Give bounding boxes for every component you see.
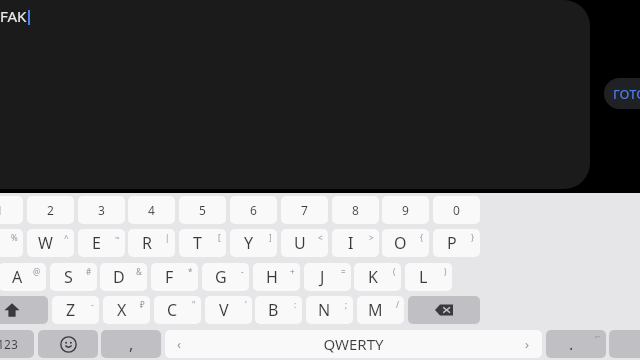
- button[interactable]: .: [546, 330, 606, 358]
- staticText: B: [268, 299, 279, 321]
- staticText: I: [348, 232, 354, 254]
- button[interactable]: L: [405, 263, 452, 291]
- button[interactable]: 9: [382, 196, 429, 224]
- button[interactable]: C: [154, 296, 201, 324]
- staticText: 2: [47, 202, 54, 218]
- staticText: {: [420, 232, 424, 243]
- button[interactable]: D: [100, 263, 147, 291]
- button[interactable]: Backspace: [408, 296, 480, 324]
- staticText: }: [471, 232, 475, 243]
- button[interactable]: 3: [78, 196, 125, 224]
- staticText: 9: [402, 202, 409, 218]
- button[interactable]: U: [281, 229, 328, 257]
- button[interactable]: Shift: [0, 296, 48, 324]
- staticText: R: [142, 232, 152, 254]
- button[interactable]: Y: [230, 229, 277, 257]
- button[interactable]: N: [306, 296, 353, 324]
- staticText: 6: [250, 202, 257, 218]
- staticText: ;: [345, 299, 348, 310]
- button[interactable]: E: [78, 229, 125, 257]
- button[interactable]: Enter: [609, 330, 640, 358]
- staticText: (: [393, 266, 396, 277]
- staticText: *: [188, 266, 193, 277]
- staticText: |: [165, 232, 170, 243]
- button[interactable]: S: [50, 263, 97, 291]
- button[interactable]: B: [255, 296, 302, 324]
- button[interactable]: 6: [230, 196, 277, 224]
- staticText: ⌐: [594, 333, 601, 342]
- button[interactable]: 8: [332, 196, 379, 224]
- staticText: ): [444, 266, 447, 277]
- staticText: ~: [115, 232, 120, 243]
- button[interactable]: 4: [128, 196, 175, 224]
- staticText: S: [64, 266, 73, 288]
- staticText: [: [218, 232, 221, 243]
- button[interactable]: O: [382, 229, 429, 257]
- button[interactable]: ,: [101, 330, 161, 358]
- staticText: G: [215, 266, 227, 288]
- button[interactable]: FAK: [0, 0, 590, 189]
- button[interactable]: ГОТОВО: [604, 78, 640, 109]
- button[interactable]: Z: [52, 296, 99, 324]
- staticText: H: [266, 266, 278, 288]
- button[interactable]: F: [151, 263, 198, 291]
- staticText: ₽: [140, 299, 145, 310]
- button[interactable]: 5: [179, 196, 226, 224]
- button[interactable]: I: [332, 229, 379, 257]
- button[interactable]: ?123: [0, 330, 34, 358]
- staticText: K: [368, 266, 378, 288]
- button[interactable]: V: [205, 296, 252, 324]
- staticText: Y: [244, 232, 254, 254]
- staticText: Z: [66, 299, 76, 321]
- staticText: +: [290, 266, 295, 277]
- button[interactable]: T: [179, 229, 226, 257]
- button[interactable]: H: [253, 263, 300, 291]
- button[interactable]: J: [304, 263, 351, 291]
- staticText: &: [136, 266, 142, 277]
- staticText: 7: [301, 202, 308, 218]
- button[interactable]: P: [433, 229, 480, 257]
- staticText: U: [294, 232, 306, 254]
- staticText: N: [318, 299, 331, 321]
- button[interactable]: M: [357, 296, 404, 324]
- button[interactable]: 0: [433, 196, 480, 224]
- button[interactable]: A: [0, 263, 46, 291]
- staticText: 5: [199, 202, 206, 218]
- button[interactable]: Q: [0, 229, 23, 257]
- staticText: FAK: [0, 6, 27, 26]
- staticText: L: [419, 266, 428, 288]
- button[interactable]: K: [354, 263, 401, 291]
- button[interactable]: Emoji: [38, 330, 98, 358]
- staticText: A: [12, 266, 23, 288]
- button[interactable]: 2: [27, 196, 74, 224]
- staticText: F: [165, 266, 174, 288]
- button[interactable]: G: [202, 263, 249, 291]
- staticText: /: [396, 299, 399, 310]
- staticText: T: [193, 232, 202, 254]
- staticText: >: [369, 232, 374, 243]
- staticText: ГОТОВО: [613, 85, 640, 103]
- staticText: 1: [0, 202, 3, 218]
- staticText: 4: [148, 202, 155, 218]
- staticText: J: [320, 266, 325, 288]
- button[interactable]: 7: [281, 196, 328, 224]
- button[interactable]: 1: [0, 196, 23, 224]
- staticText: ,: [129, 333, 134, 355]
- staticText: ›: [525, 335, 530, 353]
- staticText: M: [368, 299, 383, 321]
- staticText: <: [318, 232, 323, 243]
- button[interactable]: R: [128, 229, 175, 257]
- staticText: ‹: [177, 335, 182, 353]
- button[interactable]: W: [27, 229, 74, 257]
- button[interactable]: ‹: [165, 330, 542, 358]
- staticText: -: [241, 266, 244, 277]
- staticText: P: [447, 232, 457, 254]
- staticText: ^: [64, 232, 69, 243]
- staticText: X: [117, 299, 127, 321]
- staticText: 3: [98, 202, 105, 218]
- staticText: C: [167, 299, 178, 321]
- staticText: W: [38, 232, 53, 254]
- staticText: =: [341, 266, 346, 277]
- staticText: ': [245, 299, 247, 310]
- button[interactable]: X: [103, 296, 150, 324]
